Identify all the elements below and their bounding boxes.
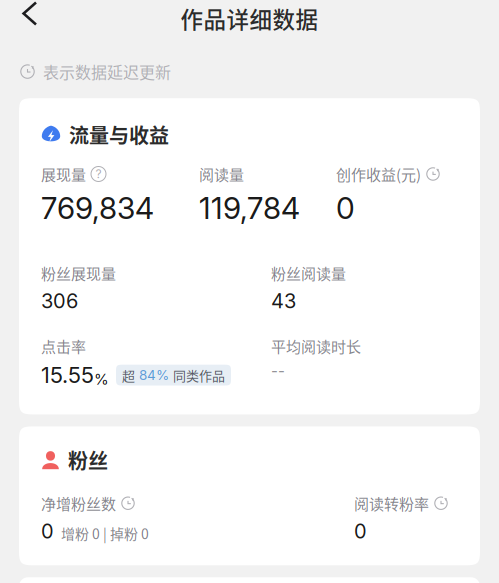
staticText: 0 — [354, 519, 367, 543]
staticText: 超 — [122, 366, 135, 384]
staticText: 流量与收益 — [69, 120, 169, 149]
staticText: 同类作品 — [173, 366, 225, 384]
staticText: 创作收益(元) — [336, 163, 421, 185]
staticText: 作品详细数据 — [180, 2, 318, 35]
staticText: 84% — [139, 367, 169, 383]
staticText: 表示数据延迟更新 — [43, 60, 171, 83]
button[interactable]: Back — [0, 0, 55, 39]
staticText: 0 — [336, 190, 355, 226]
staticText: 粉丝展现量 — [41, 262, 116, 284]
staticText: 点击率 — [41, 335, 86, 357]
staticText: 0 — [41, 519, 54, 543]
staticText: 增粉 0 | 掉粉 0 — [61, 523, 149, 543]
staticText: 平均阅读时长 — [271, 335, 361, 357]
staticText: 306 — [41, 289, 78, 313]
staticText: 粉丝阅读量 — [271, 262, 346, 284]
staticText: 净增粉丝数 — [41, 492, 116, 514]
staticText: 43 — [271, 289, 296, 313]
staticText: ? — [95, 167, 101, 181]
staticText: 119,784 — [199, 190, 300, 226]
staticText: 15.55 — [41, 362, 94, 388]
staticText: % — [94, 370, 109, 388]
staticText: 阅读转粉率 — [354, 492, 429, 514]
staticText: 展现量 — [41, 163, 86, 185]
staticText: 769,834 — [41, 190, 154, 226]
staticText: 粉丝 — [68, 445, 108, 474]
staticText: -- — [271, 362, 285, 380]
staticText: 阅读量 — [199, 163, 244, 185]
